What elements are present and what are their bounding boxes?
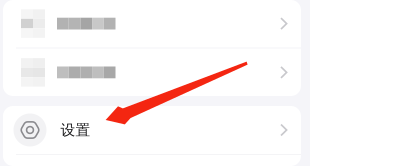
staticText: 设置: [60, 121, 90, 139]
button[interactable]: [3, 0, 301, 48]
button[interactable]: [3, 48, 301, 96]
button[interactable]: 设置: [3, 106, 301, 154]
